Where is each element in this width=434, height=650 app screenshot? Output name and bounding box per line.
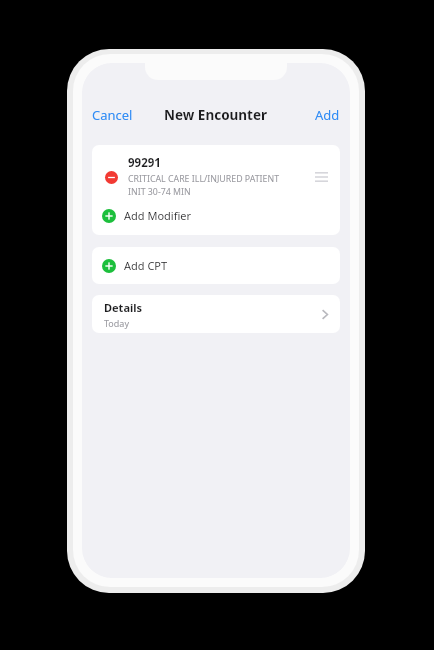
button[interactable]: Add Modifier <box>92 208 340 235</box>
staticText: INIT 30-74 MIN <box>128 186 191 198</box>
staticText: Add <box>315 106 340 124</box>
staticText: Cancel <box>92 106 133 124</box>
button[interactable]: Add CPT <box>92 247 340 284</box>
button[interactable]: Remove CPT code <box>100 166 122 188</box>
staticText: Add CPT <box>124 258 168 273</box>
staticText: 99291 <box>128 155 161 171</box>
staticText: Details <box>104 300 143 315</box>
staticText: Add Modifier <box>124 208 192 223</box>
staticText: CRITICAL CARE ILL/INJURED PATIENT <box>128 173 280 185</box>
button[interactable]: Details <box>92 295 340 333</box>
button[interactable]: Add <box>309 102 346 128</box>
staticText: New Encounter <box>164 106 268 124</box>
button[interactable]: Reorder <box>310 166 332 188</box>
staticText: Today <box>104 317 129 329</box>
button[interactable]: Cancel <box>86 102 139 128</box>
